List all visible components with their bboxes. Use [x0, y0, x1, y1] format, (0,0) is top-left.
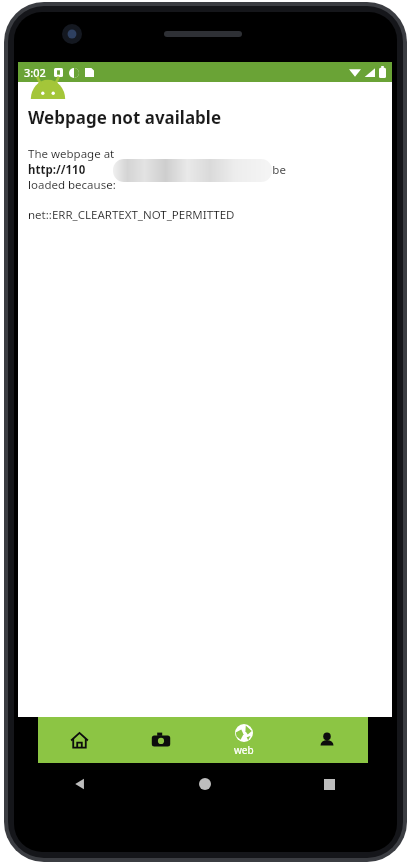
button[interactable]: Recent apps: [267, 763, 392, 805]
button[interactable]: Home: [38, 717, 120, 763]
button[interactable]: Home: [142, 763, 267, 805]
button[interactable]: Back: [18, 763, 142, 805]
button[interactable]: Web: [202, 717, 285, 763]
staticText: web: [234, 743, 254, 757]
staticText: 3:02: [24, 65, 46, 80]
staticText: The webpage at http://110 .jsp could not…: [28, 146, 286, 192]
staticText: net::ERR_CLEARTEXT_NOT_PERMITTED: [28, 207, 235, 223]
button[interactable]: Profile: [285, 717, 368, 763]
staticText: Webpage not available: [28, 106, 222, 129]
button[interactable]: Camera: [120, 717, 202, 763]
